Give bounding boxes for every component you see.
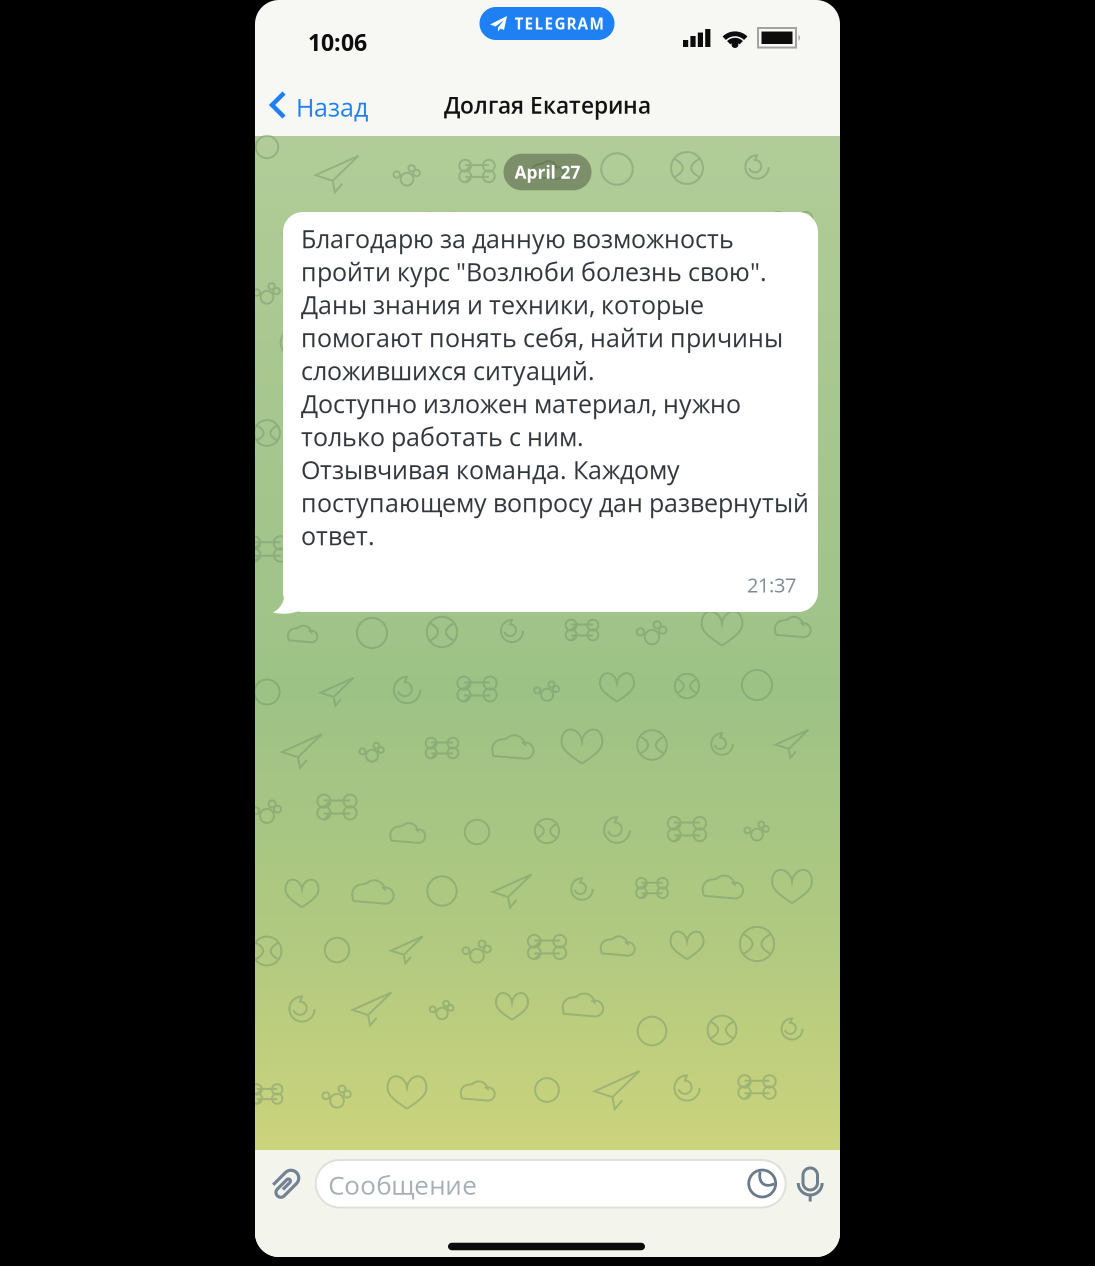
button[interactable]: Долгая Екатерина	[444, 90, 651, 120]
staticText: Отзывчивая команда. Каждому	[301, 452, 680, 486]
button[interactable]: Сообщение	[316, 1160, 786, 1207]
button[interactable]	[262, 1163, 306, 1207]
button[interactable]: TELEGRAM	[479, 7, 614, 40]
staticText: ответ.	[301, 518, 375, 552]
staticText: Долгая Екатерина	[444, 90, 651, 120]
staticText: поступающему вопросу дан развернутый	[301, 485, 809, 519]
button[interactable]: April 27	[503, 154, 591, 190]
staticText: помогают понять себя, найти причины	[301, 320, 783, 354]
staticText: только работать с ним.	[301, 419, 584, 453]
staticText: Благодарю за данную возможность	[301, 221, 734, 255]
staticText: Назад	[296, 90, 368, 124]
staticText: сложившихся ситуаций.	[301, 353, 595, 387]
staticText: 21:37	[747, 571, 796, 598]
staticText: Даны знания и техники, которые	[301, 287, 704, 321]
staticText: 10:06	[308, 26, 367, 58]
staticText: April 27	[514, 160, 580, 184]
staticText: Сообщение	[328, 1167, 477, 1202]
staticText: Доступно изложен материал, нужно	[301, 386, 741, 420]
button[interactable]: Назад	[268, 91, 388, 125]
staticText: пройти курс "Возлюби болезнь свою".	[301, 254, 767, 288]
button[interactable]	[788, 1160, 832, 1210]
staticText: TELEGRAM	[514, 13, 603, 34]
